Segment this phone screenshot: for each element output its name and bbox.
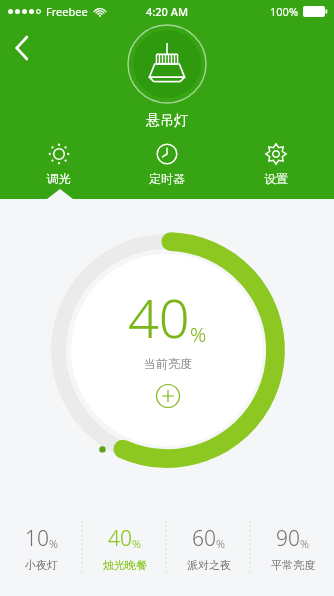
staticText: 设置 — [264, 171, 288, 186]
staticText: 当前亮度 — [144, 356, 192, 371]
button[interactable]: Increase brightness — [155, 383, 181, 409]
staticText: % — [132, 536, 141, 551]
staticText: 100% — [270, 4, 299, 19]
button[interactable]: Back — [2, 28, 42, 68]
staticText: % — [190, 321, 207, 348]
staticText: 40 — [108, 524, 132, 553]
staticText: % — [216, 536, 225, 551]
staticText: 4:20 AM — [146, 4, 189, 19]
staticText: 60 — [192, 524, 216, 553]
staticText: 定时器 — [149, 171, 185, 186]
staticText: 烛光晚餐 — [103, 558, 147, 572]
button[interactable]: 设置 — [226, 139, 326, 190]
staticText: 调光 — [47, 171, 71, 186]
staticText: 40 — [128, 280, 190, 354]
staticText: 平常亮度 — [271, 558, 315, 572]
button[interactable]: 10 — [0, 518, 82, 578]
staticText: 10 — [25, 524, 49, 553]
staticText: % — [49, 536, 58, 551]
staticText: 90 — [276, 524, 300, 553]
button[interactable]: 定时器 — [117, 139, 217, 190]
staticText: % — [300, 536, 309, 551]
staticText: 悬吊灯 — [146, 112, 188, 130]
staticText: 小夜灯 — [25, 558, 58, 572]
staticText: Freebee — [46, 4, 88, 19]
staticText: 派对之夜 — [187, 558, 231, 572]
button[interactable]: 60 — [167, 518, 250, 578]
button[interactable]: 40 — [83, 518, 166, 578]
button[interactable]: 调光 — [9, 139, 109, 190]
button[interactable]: 90 — [251, 518, 334, 578]
